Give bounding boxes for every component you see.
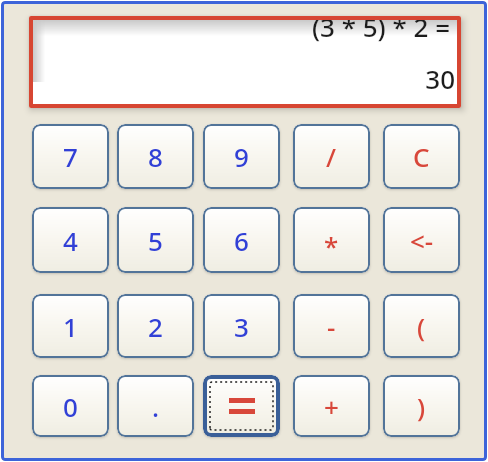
staticText: 0 — [63, 389, 78, 424]
button[interactable]: 4 — [32, 207, 109, 273]
staticText: C — [413, 139, 430, 174]
staticText: - — [327, 309, 336, 344]
staticText: 7 — [63, 139, 78, 174]
button[interactable]: ) — [383, 375, 460, 437]
button[interactable]: 0 — [32, 375, 109, 437]
staticText: 3 — [234, 309, 249, 344]
button[interactable]: - — [293, 294, 370, 358]
button[interactable]: * — [293, 207, 370, 273]
staticText: + — [324, 389, 339, 424]
staticText: 6 — [234, 223, 249, 258]
staticText: <- — [410, 223, 434, 258]
staticText: ( — [417, 309, 426, 344]
staticText: 30 — [425, 61, 455, 96]
staticText: 5 — [148, 223, 163, 258]
staticText: 2 — [148, 309, 163, 344]
button[interactable] — [203, 375, 280, 437]
staticText: 8 — [148, 139, 163, 174]
button[interactable]: 8 — [117, 124, 194, 189]
button[interactable]: 9 — [203, 124, 280, 189]
button[interactable]: 2 — [117, 294, 194, 358]
staticText: 1 — [63, 309, 78, 344]
staticText: 9 — [234, 139, 249, 174]
button[interactable]: 7 — [32, 124, 109, 189]
staticText: (3 * 5) * 2 = — [311, 16, 450, 44]
button[interactable]: ( — [383, 294, 460, 358]
button[interactable]: 3 — [203, 294, 280, 358]
button[interactable]: . — [117, 375, 194, 437]
button[interactable]: / — [293, 124, 370, 189]
button[interactable]: 1 — [32, 294, 109, 358]
button[interactable]: <- — [383, 207, 460, 273]
staticText: ) — [417, 389, 426, 424]
button[interactable]: 6 — [203, 207, 280, 273]
staticText: / — [326, 139, 337, 174]
button[interactable]: + — [293, 375, 370, 437]
button[interactable]: 5 — [117, 207, 194, 273]
staticText: 4 — [63, 223, 78, 258]
staticText: * — [324, 228, 339, 263]
staticText: . — [152, 389, 160, 424]
button[interactable]: C — [383, 124, 460, 189]
